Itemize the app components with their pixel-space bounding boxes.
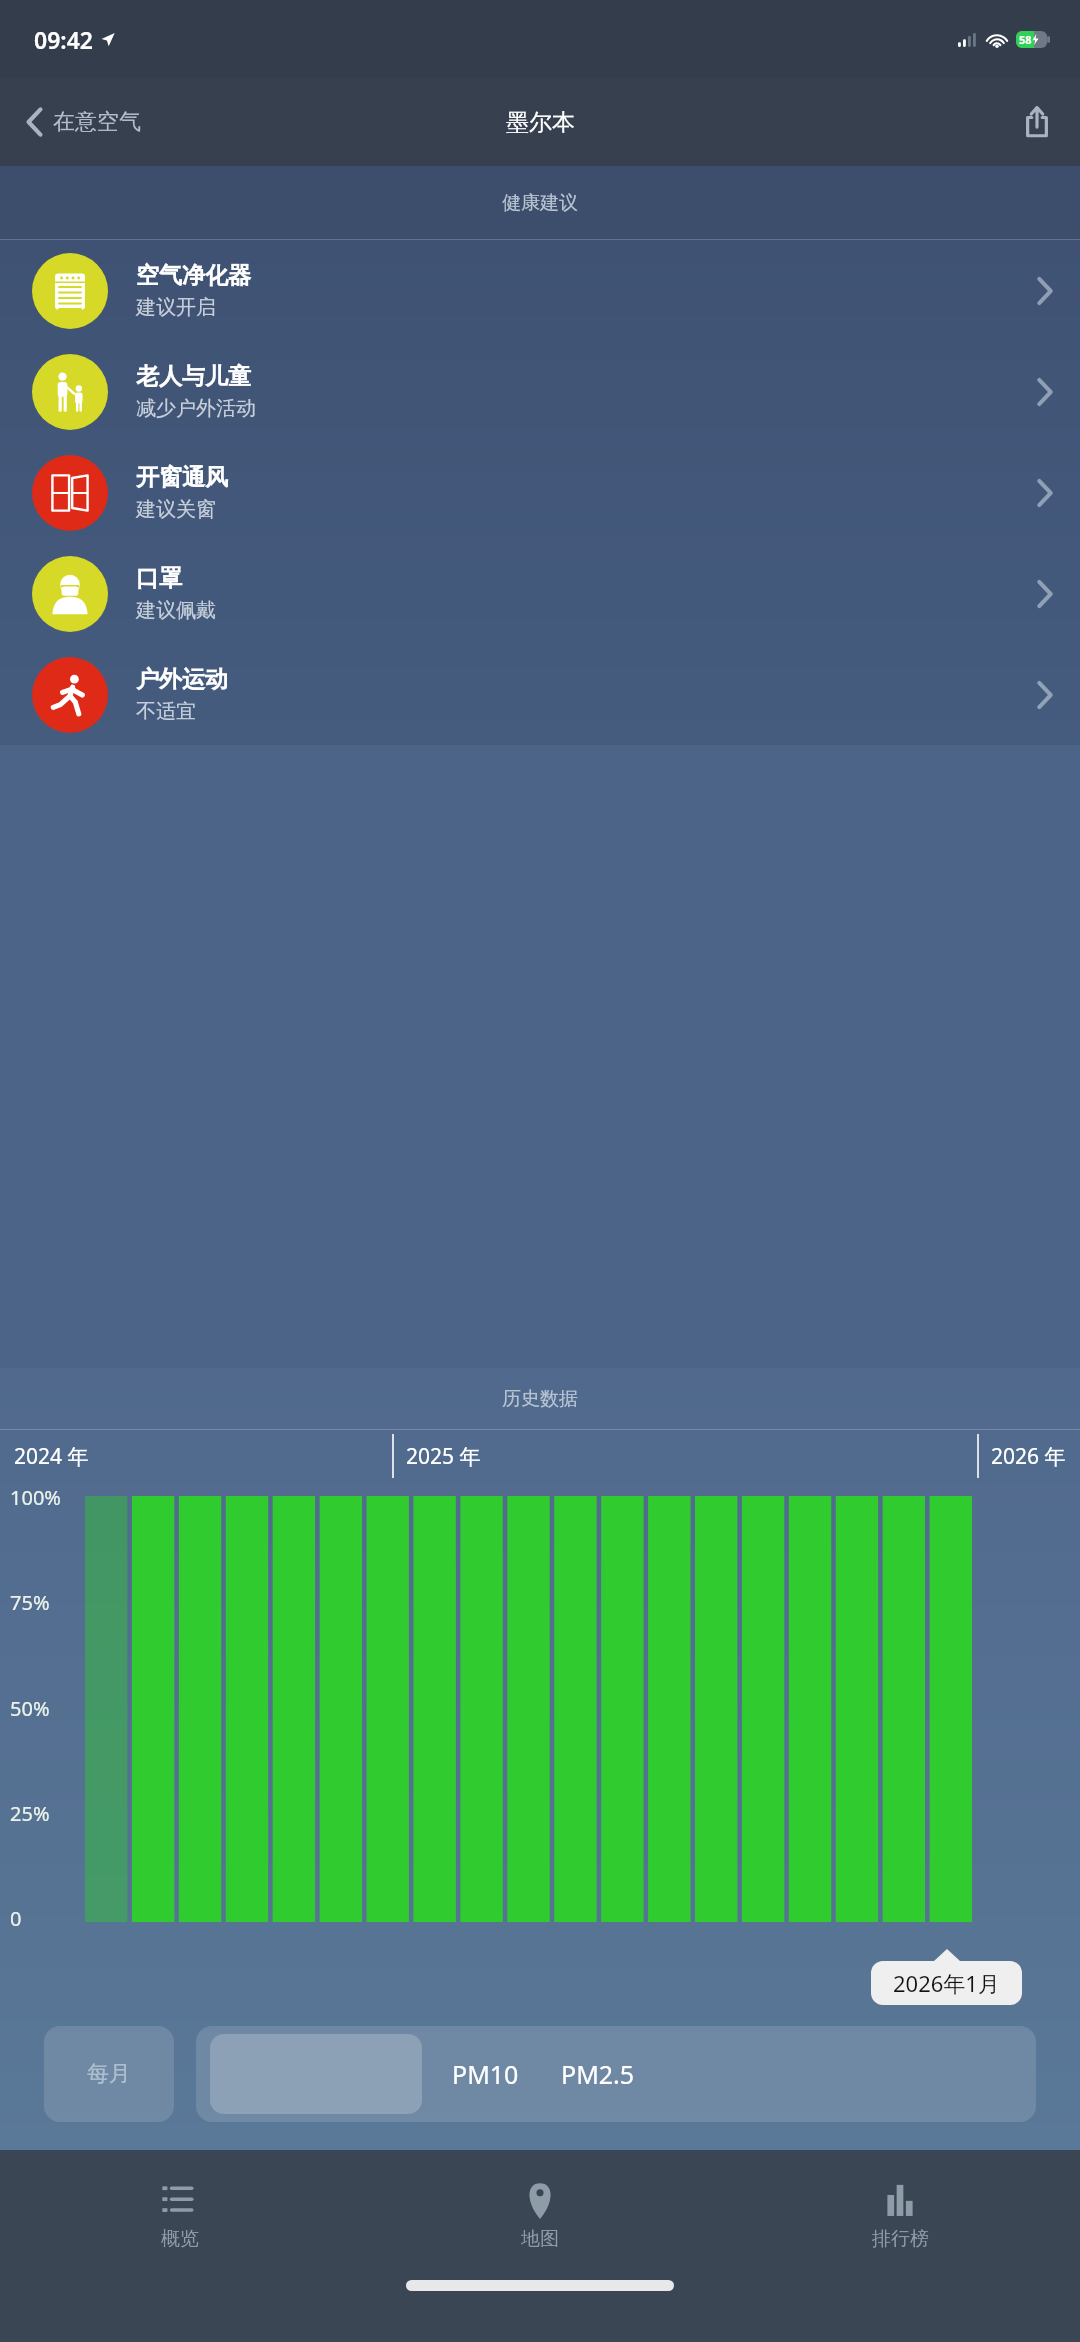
staticText: 排行榜 [872,2227,929,2251]
staticText: 建议开启 [136,295,216,320]
staticText: 建议关窗 [136,497,216,522]
staticText: 健康建议 [502,191,578,215]
staticText: PM10 [452,2057,519,2091]
button[interactable]: 排行榜 [720,2150,1080,2280]
staticText: 减少户外活动 [136,396,256,421]
staticText: 概览 [161,2227,199,2251]
staticText: 75% [10,1589,50,1616]
staticText: 老人与儿童 [136,362,251,391]
staticText: 每月 [87,2060,131,2088]
staticText: 历史数据 [502,1387,578,1411]
staticText: 25% [10,1800,50,1827]
button[interactable]: 每月 [44,2026,174,2122]
button[interactable]: 户外运动 [0,644,1080,745]
staticText: 口罩 [136,564,182,593]
staticText: 开窗通风 [136,463,228,492]
staticText: 墨尔本 [506,108,575,137]
button[interactable]: 地图 [360,2150,720,2280]
staticText: 100% [10,1484,61,1511]
staticText: PM2.5 [561,2057,635,2091]
staticText: 户外运动 [136,665,228,694]
button[interactable]: 空气净化器 [0,240,1080,341]
button[interactable]: 老人与儿童 [0,341,1080,442]
button[interactable]: 在意空气 [18,101,149,143]
staticText: 0 [10,1905,22,1932]
staticText: 09:42 [34,24,93,55]
button[interactable]: Share [1018,100,1056,144]
button[interactable]: PM10 [446,2043,525,2105]
staticText: 2026 年 [991,1442,1066,1471]
button[interactable]: PM2.5 [555,2043,641,2105]
staticText: 58 [1019,32,1032,47]
button[interactable]: 概览 [0,2150,360,2280]
staticText: 建议佩戴 [136,598,216,623]
staticText: 不适宜 [136,699,196,724]
staticText: 2025 年 [406,1442,481,1471]
staticText: 地图 [521,2227,559,2251]
button[interactable]: 口罩 [0,543,1080,644]
staticText: 空气净化器 [136,261,251,290]
staticText: 2026年1月 [893,1968,1000,1998]
button[interactable]: 开窗通风 [0,442,1080,543]
staticText: 50% [10,1695,50,1722]
staticText: 在意空气 [53,108,141,136]
staticText: 2024 年 [14,1442,89,1471]
